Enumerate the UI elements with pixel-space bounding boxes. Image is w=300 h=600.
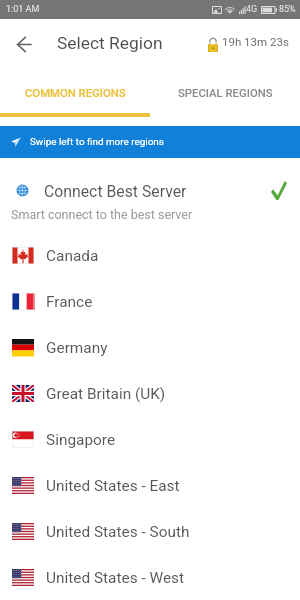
staticText: Select Region [57, 33, 163, 53]
staticText: United States - West [46, 569, 185, 587]
staticText: United States - South [46, 523, 190, 541]
button[interactable]: COMMON REGIONS [0, 70, 150, 116]
button[interactable]: Swipe left to find more regions [0, 126, 300, 158]
staticText: Singapore [46, 431, 116, 449]
staticText: COMMON REGIONS [25, 87, 126, 100]
button[interactable]: Canada [0, 233, 300, 279]
staticText: United States - East [46, 477, 180, 495]
staticText: France [46, 293, 93, 311]
staticText: 19h 13m 23s [222, 35, 289, 48]
staticText: Connect Best Server [44, 182, 187, 201]
staticText: Great Britain (UK) [46, 385, 166, 403]
button[interactable]: United States - East [0, 463, 300, 509]
button[interactable]: 19h 13m 23s [203, 31, 298, 59]
staticText: 4G [246, 4, 258, 15]
staticText: 85% [279, 4, 296, 15]
staticText: Swipe left to find more regions [30, 136, 164, 148]
button[interactable]: Back [10, 30, 38, 58]
button[interactable]: SPECIAL REGIONS [150, 70, 300, 116]
button[interactable]: Great Britain (UK) [0, 371, 300, 417]
button[interactable]: United States - West [0, 555, 300, 600]
staticText: SPECIAL REGIONS [178, 87, 273, 100]
staticText: Smart connect to the best server [11, 207, 193, 222]
button[interactable]: United States - South [0, 509, 300, 555]
staticText: Germany [46, 339, 108, 357]
button[interactable]: Singapore [0, 417, 300, 463]
button[interactable]: Connect Best Server [0, 158, 300, 231]
button[interactable]: Germany [0, 325, 300, 371]
staticText: Canada [46, 247, 99, 265]
staticText: 1:01 AM [6, 4, 40, 15]
button[interactable]: France [0, 279, 300, 325]
